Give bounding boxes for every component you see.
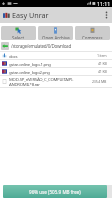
- staticText: Open Archive: [42, 35, 70, 39]
- staticText: Easy Unrar: [12, 10, 49, 20]
- button[interactable]: More options: [100, 7, 112, 23]
- staticText: gstar-online_logo2.png: [9, 69, 97, 75]
- button[interactable]: Compress: [75, 26, 110, 40]
- staticText: Compress: [82, 35, 103, 39]
- button[interactable]: Up one level: [0, 40, 112, 51]
- staticText: 11:11: [97, 0, 111, 7]
- staticText: 96% use (505.9 MB free): [29, 189, 81, 195]
- staticText: docs: [9, 53, 96, 59]
- staticText: 41 KB: [98, 69, 107, 74]
- staticText: MOD-SP_ríVERSÃO_C_COMPLETA(P)-ANDROMIL*8…: [9, 76, 91, 87]
- other: Up one level: [1, 42, 9, 50]
- button[interactable]: Open Archive: [38, 26, 73, 40]
- button[interactable]: 96% use (505.9 MB free): [3, 185, 107, 198]
- button[interactable]: docs: [0, 52, 112, 59]
- staticText: 235.4 MB: [92, 79, 107, 84]
- staticText: /storage/emulated/0/Download: [11, 43, 71, 49]
- staticText: 1 item: [97, 53, 107, 58]
- staticText: 41 KB: [98, 61, 107, 66]
- button[interactable]: Select: [1, 26, 36, 40]
- button[interactable]: MOD-SP_ríVERSÃO_C_COMPLETA(P)-ANDROMIL*8…: [0, 76, 112, 87]
- button[interactable]: gstar-online_logo2.png: [0, 68, 112, 75]
- staticText: Select: [12, 35, 25, 39]
- button[interactable]: gstar-online_logo-1.png: [0, 60, 112, 67]
- staticText: gstar-online_logo-1.png: [9, 61, 97, 67]
